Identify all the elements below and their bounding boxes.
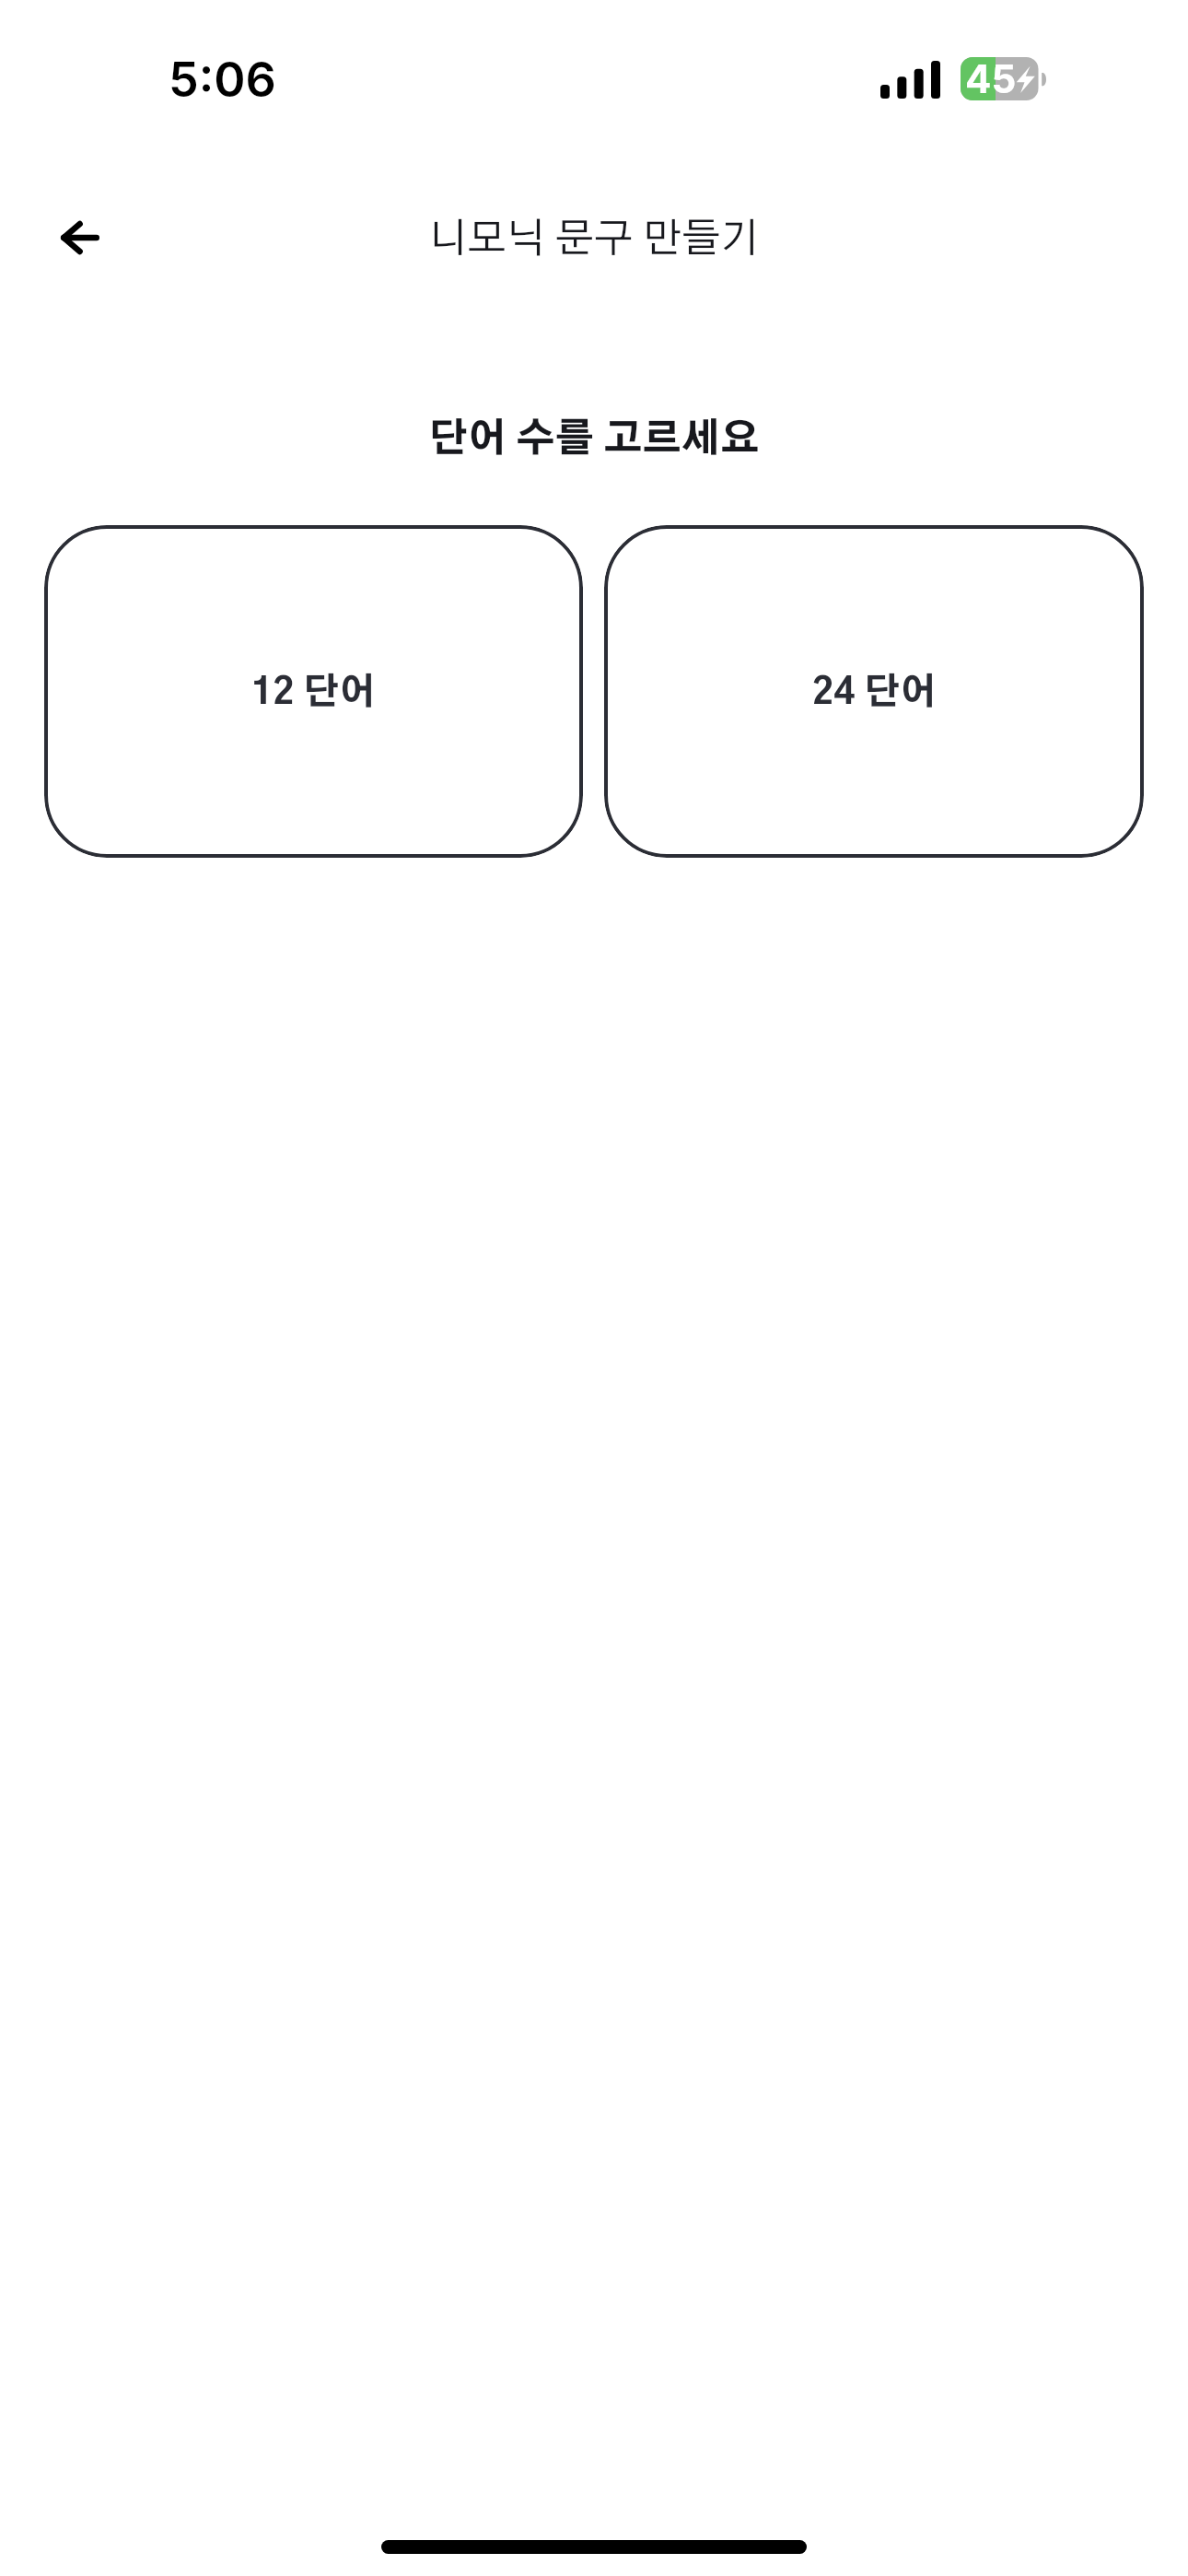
staticText: 12 단어 bbox=[251, 675, 376, 711]
staticText: 24 단어 bbox=[812, 675, 937, 711]
button[interactable]: 24 단어 bbox=[604, 525, 1144, 858]
staticText: 단어 수를 고르세요 bbox=[0, 420, 1188, 459]
staticText: 45 bbox=[965, 55, 1017, 99]
button[interactable]: 12 단어 bbox=[44, 525, 583, 858]
staticText: 니모닉 문구 만들기 bbox=[0, 219, 1188, 260]
staticText: 5:06 bbox=[169, 51, 276, 109]
button[interactable]: Back bbox=[25, 182, 135, 293]
